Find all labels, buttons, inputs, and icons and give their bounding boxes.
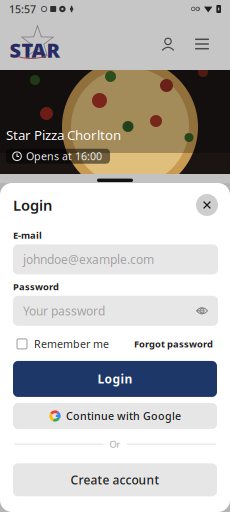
staticText: Your password [23,303,105,319]
staticText: Password [13,280,59,293]
staticText: Or [109,438,120,450]
staticText: STAR [9,37,60,63]
button[interactable]: Menu [190,31,214,57]
button[interactable]: Continue with Google [13,403,217,429]
staticText: johndoe@example.com [23,251,154,267]
staticText: Login [97,371,132,387]
staticText: E-mail [13,229,42,241]
button[interactable]: Close [196,194,218,216]
staticText: Create account [70,472,159,488]
staticText: Forgot password [134,338,213,350]
staticText: 15:57 [9,2,36,16]
button[interactable]: Create account [13,463,217,496]
staticText: Star Pizza Chorlton [6,126,121,144]
button[interactable]: Forgot password [134,338,213,350]
button[interactable]: Login [13,361,217,397]
staticText: Remember me [34,337,109,351]
staticText: Login [13,195,52,215]
staticText: Continue with Google [66,409,181,423]
button[interactable]: Account [156,31,180,57]
button[interactable]: Remember me [17,337,109,351]
staticText: Opens at 16:00 [26,149,102,163]
